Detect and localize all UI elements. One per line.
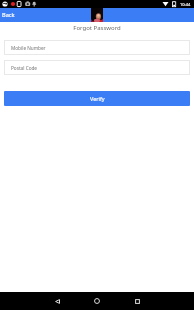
button[interactable]: Postal Code bbox=[4, 60, 190, 75]
staticText: Verify bbox=[90, 95, 105, 102]
staticText: Postal Code bbox=[11, 65, 37, 71]
button[interactable]: Home bbox=[77, 292, 117, 310]
staticText: Mobile Number bbox=[11, 45, 46, 51]
button[interactable]: Recent apps bbox=[117, 292, 157, 310]
staticText: 10:44 bbox=[180, 2, 191, 7]
button[interactable]: Verify bbox=[4, 91, 190, 106]
button[interactable]: Back bbox=[0, 9, 18, 21]
staticText: Forgot Password bbox=[0, 24, 194, 32]
button[interactable]: Back bbox=[37, 292, 77, 310]
staticText: Back bbox=[2, 11, 15, 19]
button[interactable]: Mobile Number bbox=[4, 40, 190, 55]
